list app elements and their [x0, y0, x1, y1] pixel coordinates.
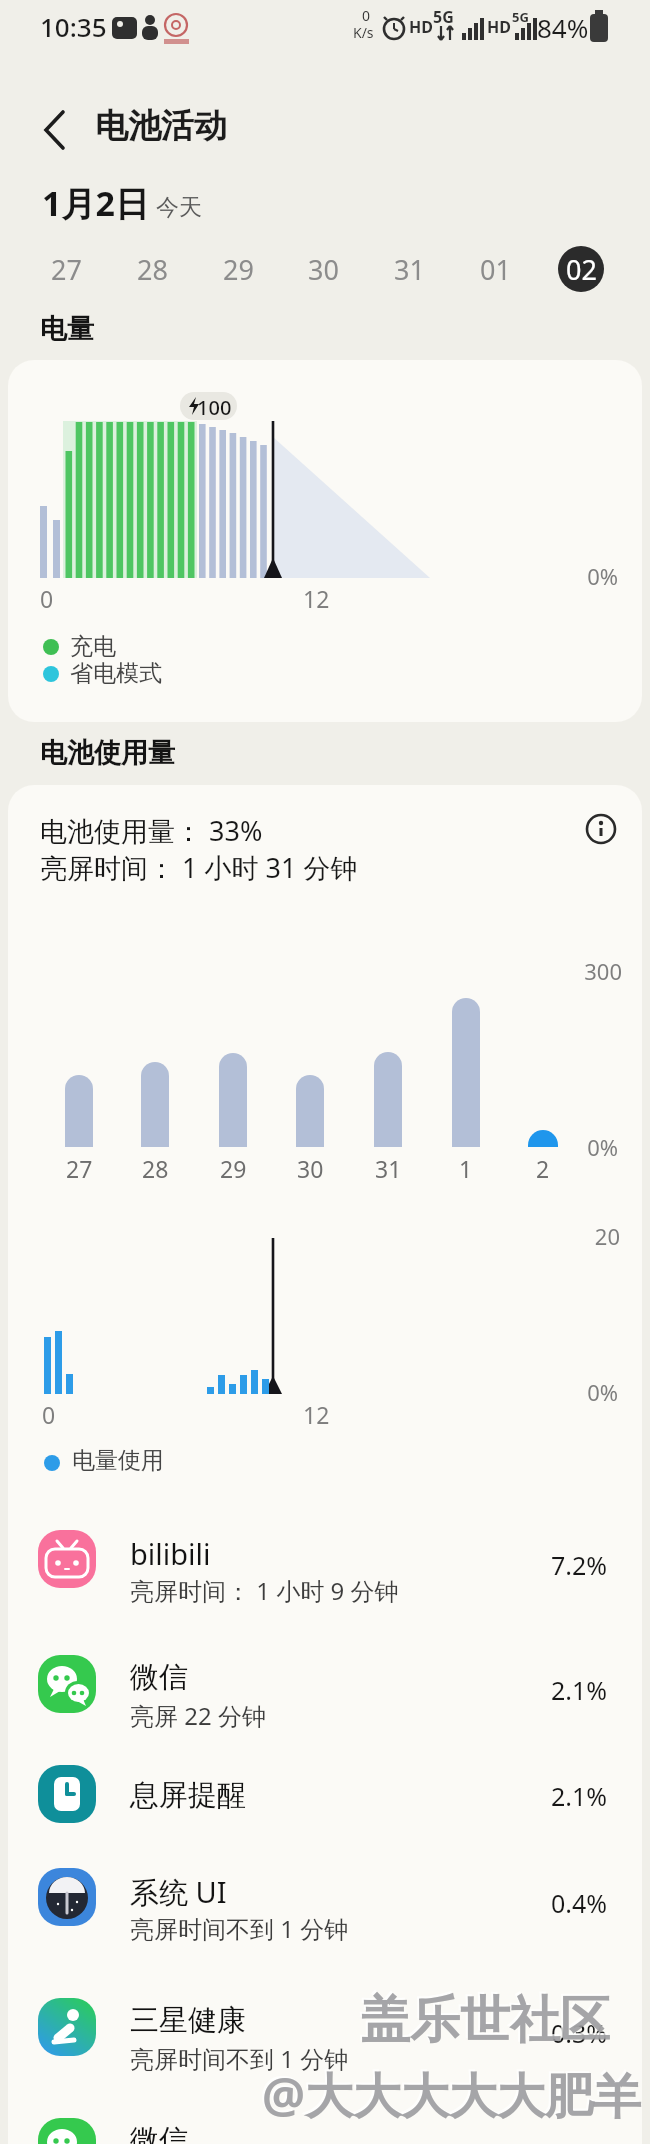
staticText: @大大大大大肥羊 — [262, 2062, 642, 2128]
staticText: bilibili — [130, 1534, 211, 1573]
staticText: 28 — [142, 1153, 169, 1184]
staticText: 今天 — [156, 193, 202, 222]
staticText: 29 — [223, 251, 254, 288]
staticText: 27 — [66, 1153, 93, 1184]
staticText: 20 — [594, 1221, 620, 1251]
button[interactable]: 系统 UI — [8, 1854, 642, 1976]
staticText: HD — [409, 16, 433, 38]
staticText: 0 — [42, 1399, 56, 1430]
staticText: 1 — [459, 1153, 473, 1184]
staticText: @大大大大大肥羊 — [260, 2060, 640, 2126]
staticText: 30 — [308, 251, 339, 288]
staticText: 0 — [362, 6, 371, 25]
staticText: 盖乐世社区 — [358, 1987, 608, 2050]
button[interactable]: 28 — [122, 240, 182, 298]
staticText: 电量 — [40, 312, 94, 346]
staticText: 充电 — [70, 632, 116, 661]
staticText: 电量使用 — [72, 1446, 164, 1475]
staticText: 84% — [537, 10, 589, 45]
button[interactable]: bilibili — [8, 1516, 642, 1638]
staticText: 5G — [512, 8, 529, 26]
button[interactable]: 01 — [465, 240, 525, 298]
staticText: K/s — [353, 23, 374, 42]
staticText: 电池活动 — [95, 105, 227, 147]
button[interactable]: 30 — [293, 240, 353, 298]
staticText: 01 — [480, 251, 511, 288]
button[interactable]: 02 — [551, 240, 611, 298]
staticText: 2 — [536, 1153, 550, 1184]
staticText: 系统 UI — [130, 1872, 227, 1912]
staticText: 省电模式 — [70, 659, 162, 688]
staticText: 0.3% — [551, 2016, 608, 2050]
staticText: 31 — [375, 1153, 402, 1184]
button[interactable]: 息屏提醒 — [8, 1751, 642, 1873]
staticText: 100 — [197, 394, 232, 421]
staticText: 微信 — [130, 1659, 188, 1696]
button[interactable] — [32, 102, 84, 154]
staticText: 微信 — [130, 2122, 188, 2144]
staticText: HD — [487, 16, 511, 38]
staticText: 7.2% — [551, 1548, 608, 1582]
button[interactable]: 三星健康 — [8, 1984, 642, 2106]
staticText: 29 — [220, 1153, 247, 1184]
staticText: 电池使用量： 33% — [40, 812, 263, 849]
staticText: 31 — [394, 251, 425, 288]
staticText: 盖乐世社区 — [360, 1989, 610, 2052]
button[interactable]: 29 — [208, 240, 268, 298]
staticText: 0.4% — [551, 1886, 608, 1920]
staticText: 0% — [587, 561, 618, 591]
staticText: 2.1% — [551, 1779, 608, 1813]
staticText: 亮屏时间不到 1 分钟 — [130, 1912, 349, 1945]
staticText: 27 — [51, 251, 82, 288]
staticText: 1月2日 — [42, 180, 149, 226]
staticText: 0 — [40, 583, 54, 614]
staticText: 三星健康 — [130, 2002, 246, 2039]
staticText: 28 — [137, 251, 168, 288]
staticText: 亮屏时间： 1 小时 9 分钟 — [130, 1574, 399, 1607]
staticText: 息屏提醒 — [130, 1777, 246, 1814]
staticText: 亮屏时间： 1 小时 31 分钟 — [40, 849, 358, 886]
staticText: 02 — [566, 251, 597, 288]
staticText: 2.1% — [551, 1673, 608, 1707]
staticText: 12 — [303, 1399, 330, 1430]
staticText: 5G — [433, 6, 454, 28]
staticText: 0% — [587, 1377, 618, 1407]
staticText: 30 — [297, 1153, 324, 1184]
button[interactable]: 微信 — [8, 1641, 642, 1763]
staticText: 300 — [584, 956, 622, 986]
button[interactable] — [580, 808, 624, 852]
staticText: 12 — [303, 583, 330, 614]
staticText: 电池使用量 — [40, 736, 175, 770]
button[interactable]: 31 — [379, 240, 439, 298]
staticText: 亮屏时间不到 1 分钟 — [130, 2042, 349, 2075]
button[interactable]: 27 — [36, 240, 96, 298]
staticText: 0% — [587, 1132, 618, 1162]
staticText: 10:35 — [40, 9, 107, 44]
staticText: 亮屏 22 分钟 — [130, 1699, 266, 1732]
button[interactable]: 微信 — [8, 2104, 642, 2144]
